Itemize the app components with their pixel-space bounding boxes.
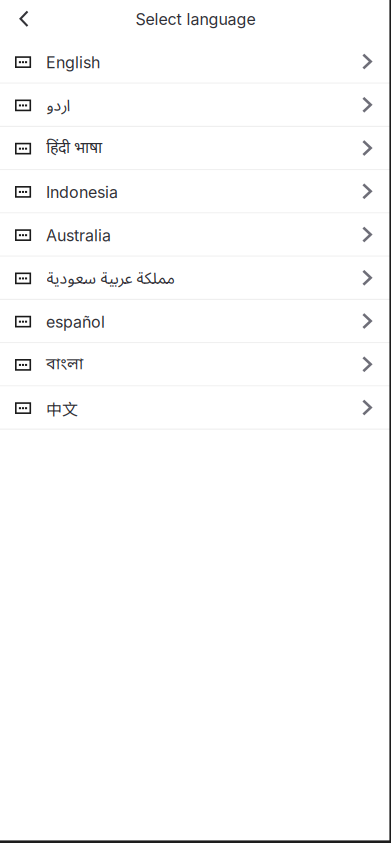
- button[interactable]: اردو: [0, 84, 391, 127]
- button[interactable]: Australia: [0, 213, 391, 257]
- staticText: español: [46, 312, 105, 332]
- staticText: বাংলা: [46, 355, 83, 376]
- button[interactable]: español: [0, 300, 391, 343]
- button[interactable]: Back: [6, 1, 42, 40]
- button[interactable]: हिंदी भाषा: [0, 127, 391, 170]
- button[interactable]: Indonesia: [0, 170, 391, 213]
- staticText: مملكة عربية سعودية: [46, 262, 174, 296]
- staticText: اردو: [46, 89, 70, 123]
- staticText: Select language: [135, 10, 255, 29]
- navigationBar: Select language: [0, 0, 391, 40]
- button[interactable]: 中文: [0, 386, 391, 430]
- staticText: हिंदी भाषा: [46, 139, 102, 159]
- staticText: Australia: [46, 226, 111, 245]
- staticText: English: [46, 53, 100, 72]
- button[interactable]: مملكة عربية سعودية: [0, 257, 391, 300]
- button[interactable]: English: [0, 40, 391, 84]
- staticText: Indonesia: [46, 183, 118, 202]
- button[interactable]: বাংলা: [0, 343, 391, 386]
- staticText: 中文: [46, 397, 78, 420]
